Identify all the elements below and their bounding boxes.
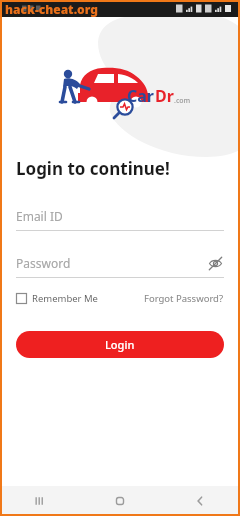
button[interactable]: Email ID bbox=[16, 206, 224, 231]
staticText: Login to continue! bbox=[16, 157, 170, 180]
staticText: .com bbox=[174, 96, 191, 106]
button[interactable]: Show password bbox=[206, 254, 224, 272]
staticText: hack-cheat.org bbox=[5, 1, 98, 17]
staticText: Login bbox=[105, 337, 135, 352]
staticText: Remember Me bbox=[32, 292, 98, 305]
button[interactable]: Password bbox=[16, 253, 224, 278]
staticText: Email ID bbox=[16, 208, 224, 224]
staticText: Password bbox=[16, 255, 206, 271]
button[interactable]: Home bbox=[80, 486, 160, 516]
staticText: Car bbox=[127, 85, 155, 107]
button[interactable]: Back bbox=[160, 486, 240, 516]
button[interactable]: Forgot Password? bbox=[144, 292, 224, 305]
button[interactable]: Recents bbox=[0, 486, 80, 516]
button[interactable]: Remember Me bbox=[16, 292, 98, 305]
button[interactable]: Login bbox=[16, 331, 224, 358]
staticText: Dr bbox=[155, 85, 174, 107]
